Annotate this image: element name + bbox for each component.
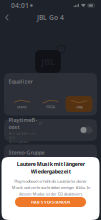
staticText: Lautere Musik mit längerer Wiedergabezei… (16, 160, 84, 175)
staticText: Playmodboost erhöht die Lautstärke deine… (11, 179, 89, 196)
staticText: GRAFFIC (16, 105, 27, 109)
staticText: Mehr Lautstärke und mehr Wiedergabezeit (8, 132, 35, 144)
staticText: 04:01 (11, 1, 29, 10)
staticText: PlaytimeBoost (8, 116, 37, 130)
button[interactable]: PlaytimeBoost (80, 126, 92, 133)
staticText: VOCAL (46, 105, 55, 109)
staticText: CHILL (75, 105, 82, 109)
button[interactable]: HAB'S VERSTANDEN (15, 197, 86, 207)
staticText: JBL Go 4 (37, 13, 64, 22)
staticText: HAB'S VERSTANDEN (31, 199, 70, 205)
button[interactable]: GRAFFIC (8, 96, 35, 112)
staticText: Stereo-Gruppe (8, 149, 44, 156)
staticText: Equalizer (8, 78, 32, 85)
staticText: JBL (41, 55, 55, 68)
button[interactable]: Back (1, 11, 12, 24)
button[interactable]: CHILL (65, 96, 92, 112)
button[interactable]: VOCAL (37, 96, 64, 112)
